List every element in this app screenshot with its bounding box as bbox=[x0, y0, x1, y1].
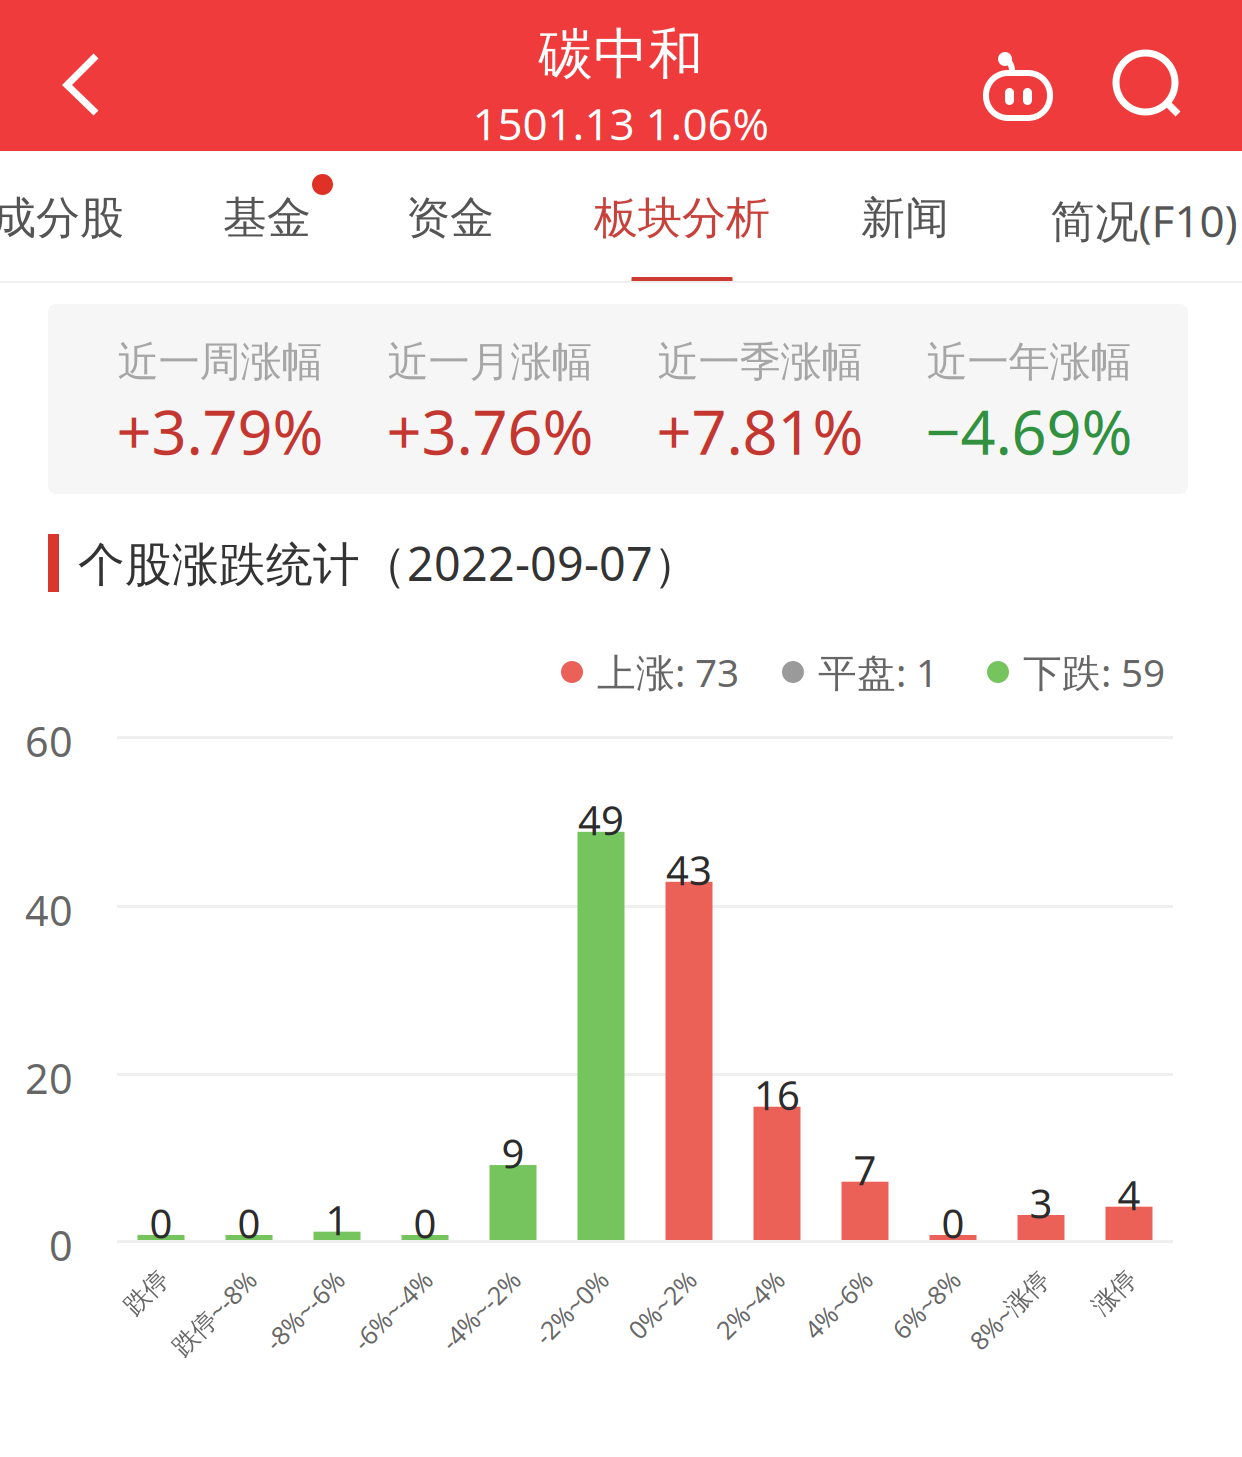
staticText: 近一季涨幅 bbox=[657, 337, 862, 387]
staticText: 新闻 bbox=[861, 191, 949, 245]
staticText: 0 bbox=[237, 1196, 260, 1249]
staticText: 跌停 bbox=[114, 1259, 164, 1290]
staticText: 1 bbox=[325, 1193, 348, 1246]
staticText: 下跌: 59 bbox=[1023, 646, 1165, 698]
button[interactable]: 资金 bbox=[0, 151, 300, 283]
button[interactable]: 成分股 bbox=[0, 151, 300, 283]
button[interactable]: 板块分析 bbox=[0, 151, 300, 283]
staticText: 资金 bbox=[406, 191, 494, 245]
staticText: 3 bbox=[1029, 1176, 1052, 1230]
button[interactable]: 新闻 bbox=[0, 151, 300, 283]
staticText: 43 bbox=[666, 843, 712, 896]
staticText: +7.81% bbox=[656, 390, 863, 472]
staticText: 0 bbox=[941, 1196, 964, 1249]
staticText: −4.69% bbox=[925, 390, 1132, 472]
staticText: 近一周涨幅 bbox=[117, 337, 322, 387]
staticText: -6%~-4% bbox=[328, 1258, 428, 1292]
staticText: 基金 bbox=[223, 191, 311, 245]
staticText: 板块分析 bbox=[594, 191, 770, 245]
staticText: 碳中和 bbox=[538, 21, 703, 88]
staticText: 近一月涨幅 bbox=[387, 337, 592, 387]
staticText: 16 bbox=[754, 1068, 800, 1121]
staticText: 49 bbox=[578, 793, 624, 846]
staticText: 4 bbox=[1117, 1168, 1140, 1221]
staticText: -8%~-6% bbox=[240, 1258, 340, 1292]
staticText: 7 bbox=[853, 1143, 876, 1196]
staticText: 0 bbox=[149, 1196, 172, 1249]
staticText: 60 bbox=[25, 714, 73, 768]
staticText: 平盘: 1 bbox=[818, 646, 938, 698]
staticText: 个股涨跌统计（2022-09-07） bbox=[78, 532, 700, 594]
staticText: 涨停 bbox=[1082, 1259, 1132, 1290]
button[interactable]: 简况(F10) bbox=[0, 151, 300, 283]
staticText: 上涨: 73 bbox=[597, 646, 739, 698]
staticText: 近一年涨幅 bbox=[926, 337, 1131, 387]
staticText: +3.79% bbox=[116, 390, 323, 472]
staticText: 6%~8% bbox=[872, 1258, 956, 1292]
staticText: 2%~4% bbox=[696, 1258, 780, 1292]
staticText: 跌停~-8% bbox=[145, 1258, 252, 1292]
staticText: 20 bbox=[25, 1051, 73, 1105]
staticText: 0 bbox=[413, 1196, 436, 1249]
staticText: 成分股 bbox=[0, 191, 124, 245]
staticText: 1501.13 1.06% bbox=[472, 94, 769, 152]
button[interactable]: 智能助手 bbox=[955, 0, 1075, 151]
button[interactable]: 搜索 bbox=[1087, 0, 1207, 151]
staticText: 9 bbox=[501, 1126, 524, 1180]
staticText: -2%~0% bbox=[512, 1258, 604, 1292]
button[interactable]: 返回 bbox=[0, 0, 130, 151]
staticText: 8%~涨停 bbox=[945, 1258, 1044, 1292]
staticText: -4%~-2% bbox=[416, 1258, 516, 1292]
staticText: +3.76% bbox=[386, 390, 593, 472]
staticText: 40 bbox=[25, 883, 73, 937]
button[interactable]: 基金 bbox=[0, 151, 300, 283]
staticText: 4%~6% bbox=[784, 1258, 868, 1292]
staticText: 简况(F10) bbox=[1050, 191, 1237, 249]
staticText: 0 bbox=[49, 1218, 73, 1272]
staticText: 0%~2% bbox=[608, 1258, 692, 1292]
